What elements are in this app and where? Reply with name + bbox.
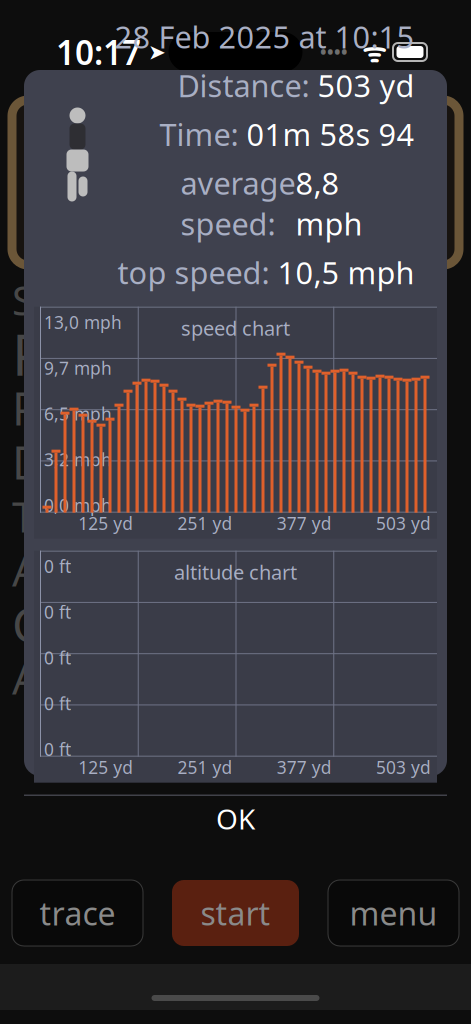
- staticText: 0 ft: [44, 738, 71, 761]
- staticText: trace: [39, 892, 115, 934]
- staticText: S: [12, 273, 34, 326]
- staticText: 0 ft: [44, 646, 71, 669]
- staticText: 9,7 mph: [44, 356, 112, 379]
- staticText: 503 yd: [317, 65, 414, 106]
- staticText: Distance:: [177, 65, 317, 106]
- staticText: 28 Feb 2025 at 10:15: [114, 16, 414, 57]
- staticText: start: [200, 892, 270, 934]
- staticText: OK: [216, 800, 255, 837]
- staticText: 10,5 mph: [277, 252, 414, 293]
- staticText: 251 yd: [177, 756, 232, 779]
- staticText: T: [12, 488, 36, 544]
- staticText: Time:: [159, 114, 246, 154]
- staticText: A: [12, 542, 39, 598]
- staticText: 125 yd: [78, 756, 133, 779]
- staticText: 0 ft: [44, 692, 71, 715]
- staticText: altitude chart: [174, 559, 297, 585]
- staticText: 8,8 mph: [295, 162, 362, 244]
- button[interactable]: trace: [12, 880, 143, 946]
- staticText: D: [12, 432, 45, 492]
- staticText: top speed:: [117, 252, 277, 293]
- staticText: 0 ft: [44, 555, 71, 578]
- staticText: speed chart: [181, 315, 290, 341]
- staticText: 01m 58s 94: [246, 114, 414, 154]
- staticText: GPS: [32, 156, 107, 209]
- staticText: 6,5 mph: [44, 402, 112, 425]
- staticText: 377 yd: [277, 512, 332, 535]
- staticText: ••••: [320, 40, 348, 63]
- staticText: C: [12, 592, 42, 656]
- staticText: 0,0 mph: [44, 494, 112, 517]
- staticText: 0 ft: [44, 600, 71, 623]
- staticText: average speed:: [180, 162, 295, 244]
- button[interactable]: start: [172, 880, 299, 946]
- button[interactable]: menu: [328, 880, 459, 946]
- staticText: menu: [349, 892, 437, 934]
- staticText: 125 yd: [78, 512, 133, 535]
- button[interactable]: OK: [24, 796, 447, 842]
- staticText: ➤: [141, 40, 166, 64]
- staticText: P: [12, 378, 39, 438]
- staticText: 13,0 mph: [44, 311, 122, 334]
- staticText: 377 yd: [277, 756, 332, 779]
- staticText: 10:17: [56, 30, 141, 74]
- staticText: P: [12, 317, 46, 391]
- staticText: ᯤ: [348, 34, 393, 70]
- staticText: 503 yd: [376, 756, 431, 779]
- staticText: 3,2 mph: [44, 448, 112, 471]
- staticText: 251 yd: [177, 512, 232, 535]
- staticText: A: [12, 650, 39, 706]
- staticText: 503 yd: [376, 512, 431, 535]
